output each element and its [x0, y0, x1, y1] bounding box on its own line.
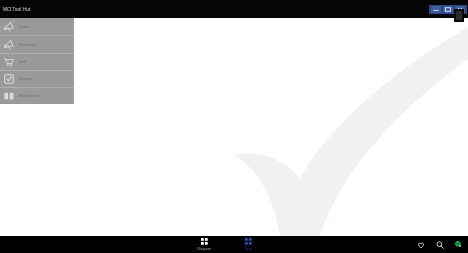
- staticText: Learn: [19, 24, 31, 30]
- button[interactable]: Grid: [235, 237, 261, 252]
- staticText: Grid: [245, 246, 252, 251]
- button[interactable]: Favorites: [414, 238, 427, 251]
- staticText: MCI Tool Hut: [3, 6, 31, 12]
- button[interactable]: App menu: [454, 9, 464, 22]
- button[interactable]: Diagram: [191, 237, 217, 252]
- button[interactable]: Close: [455, 6, 465, 13]
- button[interactable]: Brochures: [0, 88, 74, 104]
- button[interactable]: Search: [433, 238, 446, 251]
- staticText: Forms: [19, 76, 32, 82]
- staticText: Diagram: [197, 246, 211, 251]
- button[interactable]: Learn: [0, 18, 74, 35]
- staticText: Brochures: [19, 93, 40, 99]
- staticText: Sell: [19, 59, 26, 65]
- button[interactable]: Promote: [0, 36, 74, 53]
- button[interactable]: Sync: [452, 238, 465, 251]
- button[interactable]: Maximize: [443, 6, 453, 13]
- button[interactable]: Forms: [0, 71, 74, 87]
- button[interactable]: Minimize: [431, 6, 441, 13]
- button[interactable]: Sell: [0, 54, 74, 70]
- staticText: Promote: [19, 42, 37, 48]
